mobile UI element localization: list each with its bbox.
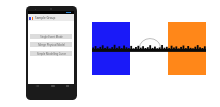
button[interactable]: Merge Physical Model — [30, 42, 72, 47]
button[interactable]: App icon — [26, 6, 77, 100]
button[interactable]: Back — [35, 85, 39, 87]
button[interactable]: Simple Modelling Curve — [30, 51, 72, 56]
button[interactable] — [92, 22, 206, 75]
other: App icon — [29, 17, 33, 20]
staticText: Single Event Mode — [40, 35, 63, 39]
button[interactable]: App icon — [28, 14, 74, 21]
staticText: Merge Physical Model — [38, 43, 65, 47]
staticText: Simple Modelling Curve — [37, 52, 66, 56]
button[interactable]: Single Event Mode — [30, 34, 72, 39]
staticText: Sample Group — [35, 16, 56, 20]
button[interactable]: Home — [51, 85, 55, 87]
